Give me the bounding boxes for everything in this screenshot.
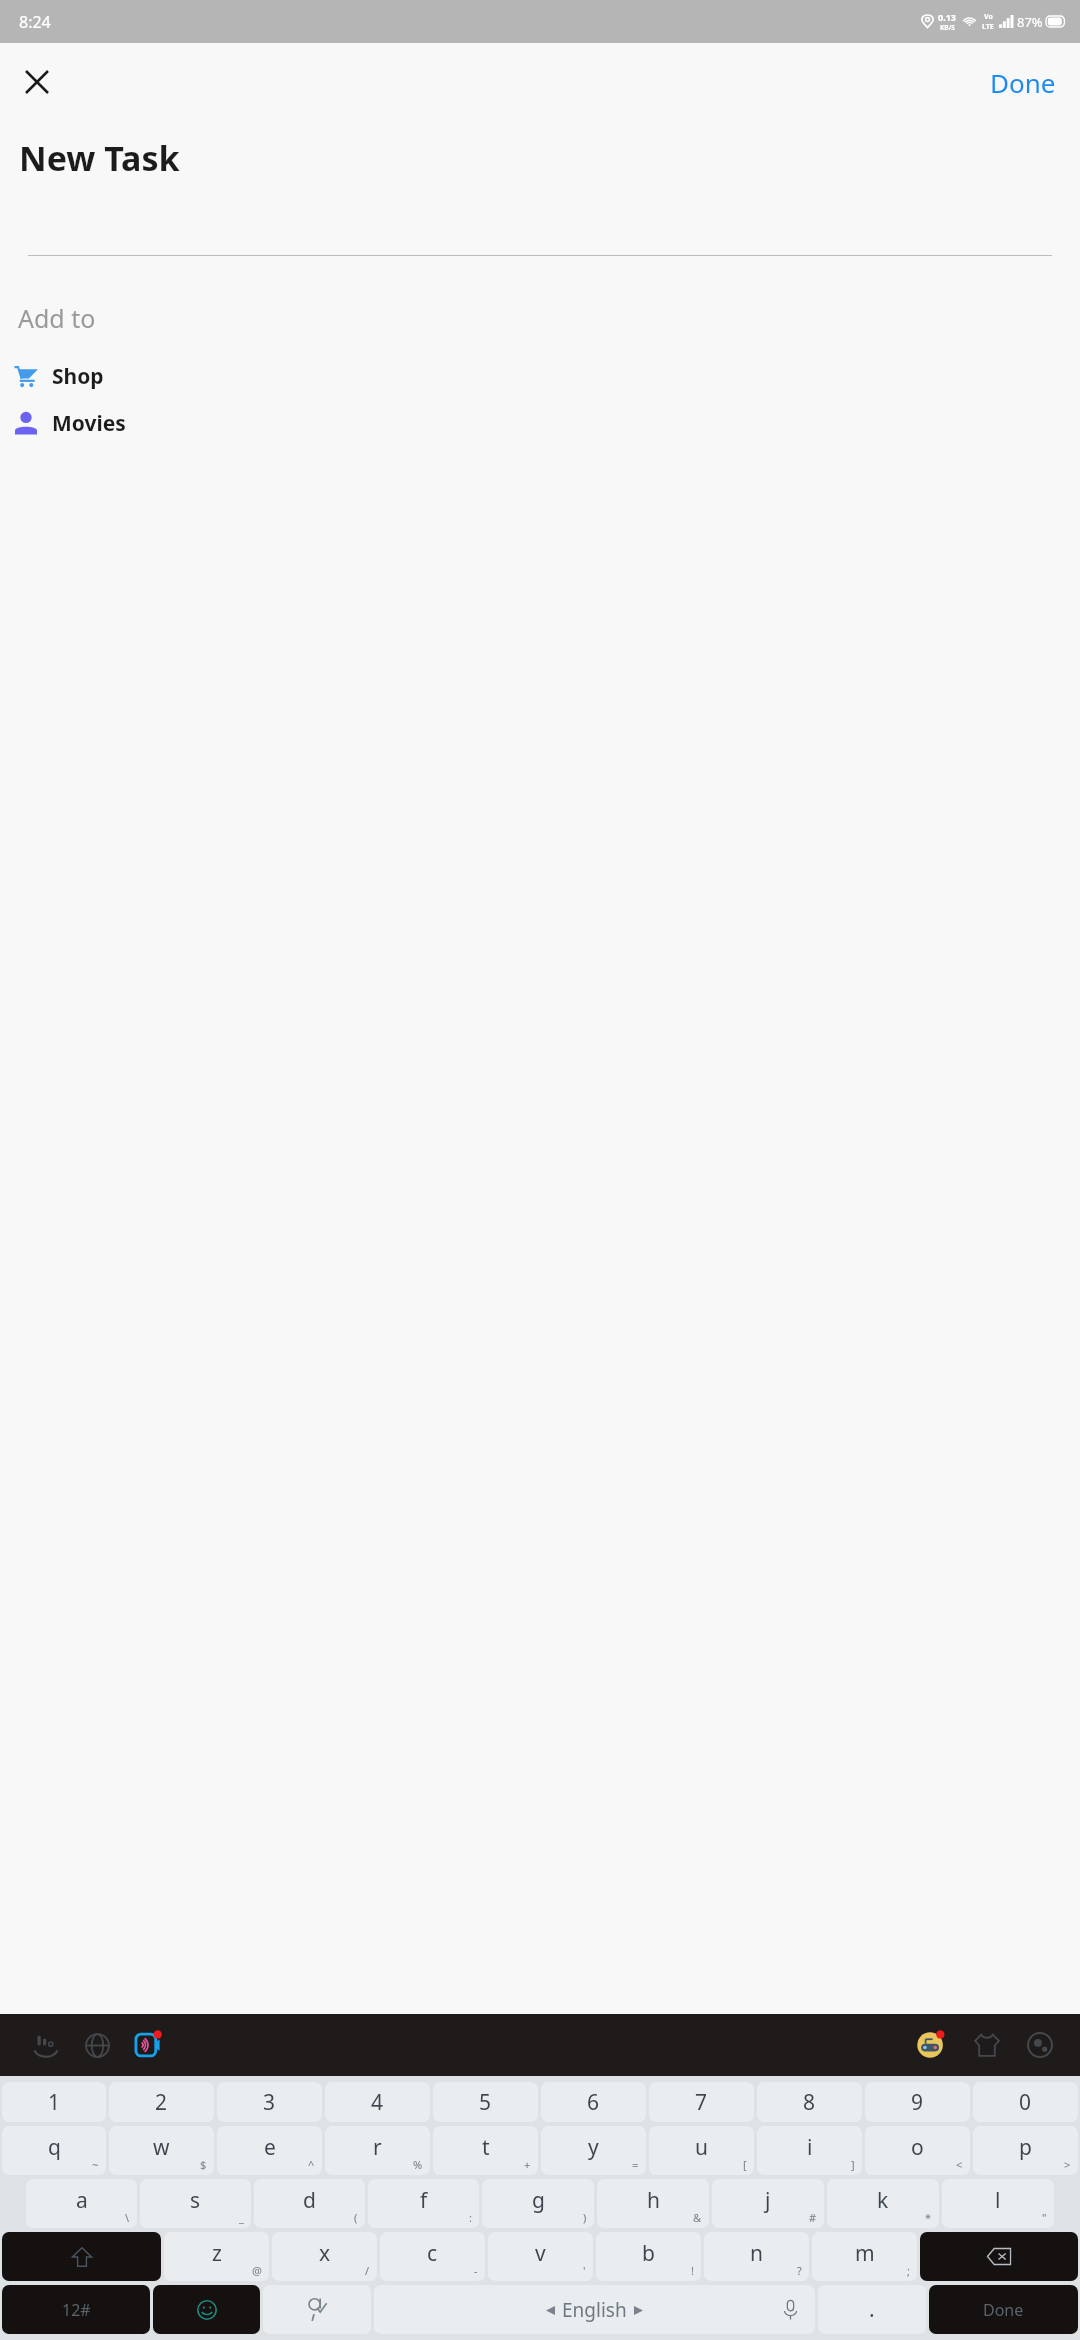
staticText: 12#: [62, 2299, 91, 2321]
button[interactable]: 1: [2, 2082, 106, 2122]
button[interactable]: 7: [649, 2082, 754, 2122]
staticText: ": [1042, 2210, 1047, 2225]
button[interactable]: Movies: [0, 400, 1080, 446]
staticText: j: [765, 2186, 771, 2215]
staticText: New Task: [19, 135, 180, 181]
staticText: 87%: [1017, 13, 1043, 31]
button[interactable]: z: [164, 2232, 269, 2281]
staticText: t: [482, 2133, 490, 2162]
button[interactable]: e: [217, 2126, 322, 2175]
button[interactable]: v: [488, 2232, 593, 2281]
button[interactable]: .: [818, 2285, 926, 2334]
staticText: r: [373, 2133, 382, 2162]
button[interactable]: Close: [13, 58, 61, 106]
button[interactable]: Autocorrect: [263, 2285, 371, 2334]
button[interactable]: w: [109, 2126, 214, 2175]
staticText: q: [48, 2133, 61, 2162]
button[interactable]: j: [712, 2179, 824, 2228]
staticText: 0: [1019, 2088, 1032, 2117]
button[interactable]: Games: [910, 2023, 954, 2067]
button[interactable]: i: [757, 2126, 862, 2175]
button[interactable]: 0: [973, 2082, 1078, 2122]
staticText: #: [809, 2210, 817, 2225]
staticText: ): [583, 2210, 587, 2225]
staticText: 8:24: [19, 11, 51, 33]
staticText: i: [807, 2133, 813, 2162]
button[interactable]: 12#: [2, 2285, 150, 2334]
staticText: Add to: [18, 301, 96, 335]
staticText: -: [474, 2263, 478, 2278]
staticText: y: [588, 2133, 599, 2162]
button[interactable]: Touchpal: [26, 2025, 66, 2065]
button[interactable]: q: [2, 2126, 106, 2175]
button[interactable]: Backspace: [920, 2232, 1078, 2281]
staticText: 4: [371, 2088, 384, 2117]
button[interactable]: English: [374, 2285, 815, 2334]
staticText: =: [632, 2157, 639, 2172]
button[interactable]: Settings: [1020, 2025, 1060, 2065]
staticText: <: [956, 2157, 963, 2172]
staticText: x: [319, 2239, 331, 2268]
button[interactable]: 5: [433, 2082, 538, 2122]
button[interactable]: Done: [980, 59, 1066, 106]
staticText: @: [252, 2263, 262, 2278]
staticText: o: [911, 2133, 924, 2162]
staticText: Shop: [52, 362, 104, 391]
button[interactable]: m: [812, 2232, 917, 2281]
staticText: s: [190, 2186, 201, 2215]
button[interactable]: 8: [757, 2082, 862, 2122]
staticText: [: [743, 2157, 747, 2172]
staticText: (: [354, 2210, 358, 2225]
button[interactable]: c: [380, 2232, 485, 2281]
button[interactable]: h: [597, 2179, 709, 2228]
button[interactable]: f: [368, 2179, 479, 2228]
button[interactable]: x: [272, 2232, 377, 2281]
staticText: 3: [263, 2088, 276, 2117]
button[interactable]: 2: [109, 2082, 214, 2122]
button[interactable]: Sticker: [128, 2023, 172, 2067]
button[interactable]: s: [140, 2179, 251, 2228]
button[interactable]: Language: [77, 2025, 117, 2065]
staticText: w: [153, 2133, 170, 2162]
button[interactable]: 3: [217, 2082, 322, 2122]
button[interactable]: p: [973, 2126, 1078, 2175]
staticText: 2: [155, 2088, 168, 2117]
staticText: *: [925, 2210, 932, 2225]
staticText: ~: [92, 2157, 99, 2172]
staticText: /: [365, 2263, 370, 2278]
button[interactable]: u: [649, 2126, 754, 2175]
button[interactable]: n: [704, 2232, 809, 2281]
button[interactable]: Emoji: [153, 2285, 260, 2334]
button[interactable]: a: [26, 2179, 137, 2228]
button[interactable]: t: [433, 2126, 538, 2175]
button[interactable]: b: [596, 2232, 701, 2281]
button[interactable]: 4: [325, 2082, 430, 2122]
button[interactable]: 6: [541, 2082, 646, 2122]
staticText: >: [1064, 2157, 1071, 2172]
staticText: k: [877, 2186, 889, 2215]
staticText: ]: [851, 2157, 855, 2172]
staticText: ^: [308, 2157, 315, 2172]
button[interactable]: 9: [865, 2082, 970, 2122]
button[interactable]: l: [942, 2179, 1054, 2228]
staticText: _: [239, 2210, 244, 2225]
button[interactable]: k: [827, 2179, 939, 2228]
button[interactable]: Done: [929, 2285, 1078, 2334]
staticText: v: [535, 2239, 546, 2268]
button[interactable]: o: [865, 2126, 970, 2175]
staticText: e: [264, 2133, 276, 2162]
staticText: u: [695, 2133, 708, 2162]
staticText: h: [647, 2186, 660, 2215]
button[interactable]: Shift: [2, 2232, 161, 2281]
staticText: b: [642, 2239, 655, 2268]
button[interactable]: y: [541, 2126, 646, 2175]
staticText: 8: [803, 2088, 816, 2117]
button[interactable]: g: [482, 2179, 594, 2228]
staticText: &: [693, 2210, 702, 2225]
staticText: Done: [990, 65, 1056, 100]
button[interactable]: Shop: [0, 353, 1080, 399]
button[interactable]: Theme: [967, 2025, 1007, 2065]
button[interactable]: d: [254, 2179, 365, 2228]
button[interactable]: r: [325, 2126, 430, 2175]
staticText: a: [76, 2186, 88, 2215]
